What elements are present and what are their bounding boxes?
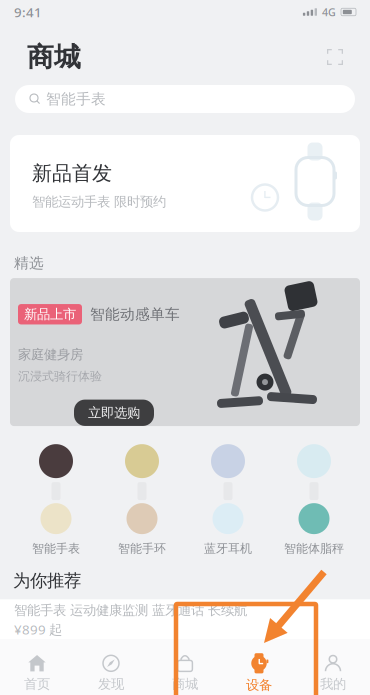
staticText: 智能运动手表 限时预约 <box>32 194 166 210</box>
button[interactable]: ¥899 起 <box>0 621 370 637</box>
staticText: 智能手环 <box>118 541 166 556</box>
staticText: 智能手表 <box>46 90 106 108</box>
staticText: 智能动感单车 <box>90 305 180 323</box>
staticText: 发现 <box>98 676 124 692</box>
staticText: 商城 <box>27 41 81 73</box>
staticText: 精选 <box>14 254 44 272</box>
staticText: 家庭健身房 <box>18 346 83 363</box>
staticText: 智能体脂秤 <box>284 541 344 556</box>
button[interactable]: 扫一扫 <box>322 44 348 70</box>
staticText: 我的 <box>320 676 346 692</box>
button[interactable]: 新品上市 <box>10 282 360 430</box>
button[interactable]: 新品首发 <box>10 135 360 232</box>
button[interactable]: 智能手表 运动健康监测 蓝牙通话 长续航 <box>0 599 370 621</box>
button[interactable]: 商城 <box>148 639 222 695</box>
staticText: 为你推荐 <box>13 570 81 591</box>
staticText: 智能手表 <box>32 541 80 556</box>
button[interactable]: 我的 <box>296 639 370 695</box>
button[interactable]: 智能手环 <box>99 440 185 562</box>
button[interactable]: 智能手表 <box>13 440 99 562</box>
staticText: 新品上市 <box>24 306 76 322</box>
button[interactable]: 智能手表 <box>15 85 355 113</box>
staticText: 智能手表 运动健康监测 蓝牙通话 长续航 <box>14 602 247 618</box>
button[interactable]: 智能体脂秤 <box>271 440 357 562</box>
staticText: 9:41 <box>14 3 42 21</box>
button[interactable]: 发现 <box>74 639 148 695</box>
staticText: 设备 <box>246 677 272 693</box>
staticText: 立即选购 <box>88 405 140 421</box>
staticText: 新品首发 <box>32 161 112 186</box>
staticText: 首页 <box>24 676 50 692</box>
button[interactable]: 设备 <box>222 639 296 695</box>
button[interactable]: 首页 <box>0 639 74 695</box>
staticText: 蓝牙耳机 <box>204 541 252 556</box>
staticText: ¥899 起 <box>14 620 62 638</box>
staticText: 沉浸式骑行体验 <box>18 369 102 383</box>
staticText: 4G <box>322 5 336 19</box>
button[interactable]: 蓝牙耳机 <box>185 440 271 562</box>
staticText: 商城 <box>172 676 198 692</box>
